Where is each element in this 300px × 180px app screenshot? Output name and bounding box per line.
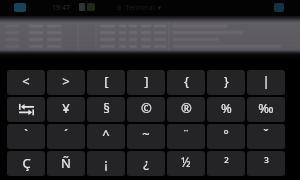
staticText: © bbox=[141, 99, 152, 117]
staticText: ½ bbox=[181, 154, 191, 170]
button[interactable]: % bbox=[207, 97, 245, 122]
button[interactable]: < bbox=[7, 70, 45, 95]
button[interactable]: ´ bbox=[47, 124, 85, 149]
staticText: ≡ Terminal ▾ bbox=[116, 3, 162, 13]
staticText: ³ bbox=[264, 154, 269, 172]
staticText: ´ bbox=[64, 125, 68, 143]
staticText: ^ bbox=[102, 125, 110, 143]
button[interactable]: ° bbox=[207, 124, 245, 149]
button[interactable]: ~ bbox=[127, 124, 165, 149]
staticText: | bbox=[262, 72, 270, 90]
staticText: ~ bbox=[142, 125, 150, 143]
button[interactable]: ² bbox=[207, 151, 245, 176]
button[interactable]: ³ bbox=[247, 151, 285, 176]
button[interactable]: ˇ bbox=[247, 124, 285, 149]
staticText: [ bbox=[104, 72, 109, 90]
button[interactable]: ¨ bbox=[167, 124, 205, 149]
button[interactable]: { bbox=[167, 70, 205, 95]
staticText: ® bbox=[181, 99, 192, 117]
staticText: § bbox=[103, 99, 110, 117]
button[interactable]: [ bbox=[87, 70, 125, 95]
staticText: Ç bbox=[22, 154, 31, 172]
staticText: ² bbox=[224, 154, 229, 172]
staticText: ¡ bbox=[104, 154, 108, 172]
button[interactable]: } bbox=[207, 70, 245, 95]
button[interactable]: ¥ bbox=[47, 97, 85, 122]
staticText: ° bbox=[223, 125, 229, 143]
button[interactable]: | bbox=[247, 70, 285, 95]
button[interactable]: ` bbox=[7, 124, 45, 149]
staticText: } bbox=[224, 72, 229, 90]
staticText: ¿ bbox=[143, 154, 149, 172]
button[interactable]: © bbox=[127, 97, 165, 122]
staticText: ` bbox=[24, 125, 28, 143]
staticText: > bbox=[62, 72, 70, 90]
button[interactable]: Ñ bbox=[47, 151, 85, 176]
staticText: 19:47 bbox=[52, 3, 70, 13]
button[interactable]: App icon bbox=[14, 3, 26, 12]
staticText: ¥ bbox=[62, 99, 70, 117]
button[interactable]: ½ bbox=[167, 151, 205, 176]
staticText: { bbox=[184, 72, 189, 90]
button[interactable]: ^ bbox=[87, 124, 125, 149]
button[interactable]: ‰ bbox=[247, 97, 285, 122]
staticText: % bbox=[221, 99, 232, 117]
staticText: ] bbox=[144, 72, 149, 90]
button[interactable]: ¿ bbox=[127, 151, 165, 176]
button[interactable]: Status icon bbox=[274, 3, 284, 12]
button[interactable]: ® bbox=[167, 97, 205, 122]
button[interactable]: > bbox=[47, 70, 85, 95]
staticText: Ñ bbox=[61, 154, 71, 172]
staticText: ¨ bbox=[182, 125, 190, 143]
staticText: ‰ bbox=[258, 99, 274, 117]
button[interactable]: Tab bbox=[7, 97, 45, 122]
button[interactable]: ] bbox=[127, 70, 165, 95]
staticText: ˇ bbox=[263, 125, 269, 143]
staticText: < bbox=[22, 72, 30, 90]
button[interactable]: Ç bbox=[7, 151, 45, 176]
button[interactable]: § bbox=[87, 97, 125, 122]
button[interactable]: ¡ bbox=[87, 151, 125, 176]
